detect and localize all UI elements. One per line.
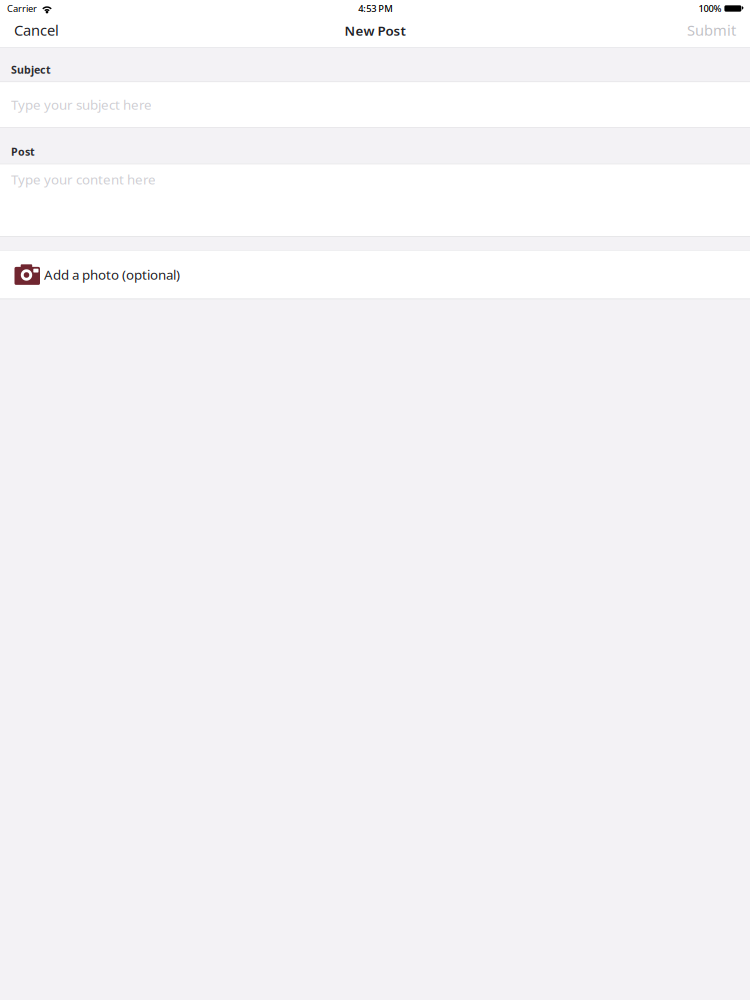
staticText: New Post bbox=[344, 22, 405, 39]
staticText: Type your content here bbox=[11, 170, 156, 188]
staticText: Post bbox=[11, 145, 35, 159]
staticText: Subject bbox=[11, 62, 51, 77]
staticText: Submit bbox=[687, 20, 736, 40]
button[interactable]: Add a photo (optional) bbox=[0, 251, 750, 299]
staticText: 4:53 PM bbox=[358, 2, 393, 15]
button[interactable]: Type your content here bbox=[0, 164, 750, 236]
staticText: Cancel bbox=[14, 20, 59, 40]
staticText: Add a photo (optional) bbox=[44, 266, 180, 283]
button[interactable]: Cancel bbox=[0, 15, 71, 49]
staticText: Carrier bbox=[7, 2, 37, 15]
staticText: 100% bbox=[698, 2, 721, 15]
staticText: Type your subject here bbox=[11, 96, 152, 113]
button[interactable]: Submit bbox=[675, 15, 750, 49]
button[interactable]: Type your subject here bbox=[0, 82, 750, 127]
